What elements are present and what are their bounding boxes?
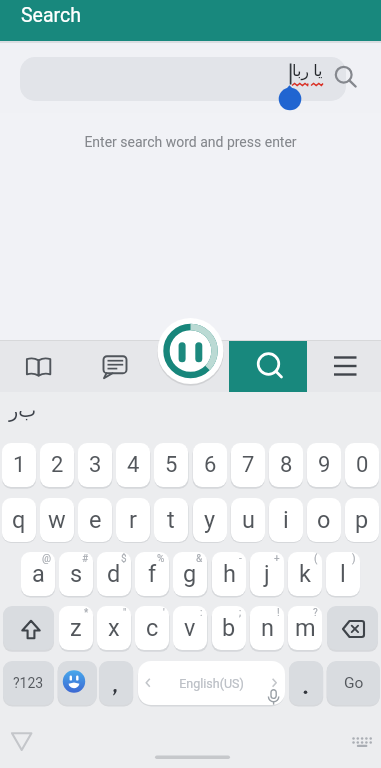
staticText: 4 [127, 452, 140, 478]
button[interactable]: p [345, 498, 379, 542]
button[interactable] [76, 341, 152, 393]
button[interactable] [99, 661, 133, 705]
button[interactable]: f [135, 552, 169, 596]
staticText: n [261, 614, 274, 642]
staticText: e [89, 506, 102, 534]
staticText: y [204, 506, 216, 534]
staticText: u [242, 506, 255, 534]
button[interactable] [6, 726, 38, 756]
staticText: t [167, 506, 175, 534]
staticText: r [129, 506, 137, 534]
staticText: " [123, 607, 127, 619]
button[interactable]: s [59, 552, 93, 596]
button[interactable] [20, 57, 346, 101]
staticText: k [299, 560, 311, 588]
button[interactable]: y [193, 498, 227, 542]
button[interactable]: 0 [345, 443, 379, 487]
button[interactable] [0, 341, 76, 393]
button[interactable] [305, 341, 381, 393]
staticText: g [183, 560, 197, 588]
staticText: English(US) [138, 676, 285, 691]
button[interactable]: j [250, 552, 284, 596]
staticText: h [223, 560, 236, 588]
staticText: w [48, 506, 66, 534]
staticText: o [317, 506, 331, 534]
button[interactable] [289, 661, 323, 705]
staticText: 1 [13, 452, 26, 478]
staticText: ! [277, 607, 280, 619]
staticText: x [108, 614, 120, 642]
staticText: + [274, 553, 280, 565]
staticText: % [157, 553, 165, 565]
button[interactable]: n [250, 606, 284, 650]
staticText: 8 [280, 452, 293, 478]
staticText: يا ربا [292, 59, 323, 81]
button[interactable]: 5 [154, 443, 188, 487]
button[interactable]: u [231, 498, 265, 542]
staticText: 7 [242, 452, 255, 478]
button[interactable]: h [212, 552, 246, 596]
staticText: ( [314, 553, 318, 565]
staticText: @ [42, 553, 51, 565]
button[interactable]: t [154, 498, 188, 542]
button[interactable] [158, 318, 224, 384]
staticText: b [222, 614, 236, 642]
button[interactable]: o [307, 498, 341, 542]
staticText: ?123 [13, 675, 44, 691]
button[interactable]: a [21, 552, 55, 596]
button[interactable] [229, 341, 305, 393]
staticText: 5 [165, 452, 178, 478]
button[interactable]: x [97, 606, 131, 650]
button[interactable]: w [40, 498, 74, 542]
button[interactable]: g [173, 552, 207, 596]
staticText: $ [121, 553, 127, 565]
staticText: # [82, 553, 89, 565]
button[interactable] [152, 341, 228, 393]
button[interactable]: Search [0, 0, 381, 41]
staticText: - [239, 553, 242, 565]
button[interactable]: 1 [2, 443, 36, 487]
button[interactable]: i [269, 498, 303, 542]
button[interactable]: m [288, 606, 322, 650]
staticText: i [283, 506, 289, 534]
staticText: 0 [356, 452, 369, 478]
button[interactable]: r [116, 498, 150, 542]
button[interactable]: 9 [307, 443, 341, 487]
button[interactable]: z [59, 606, 93, 650]
button[interactable]: 6 [193, 443, 227, 487]
button[interactable] [229, 341, 307, 393]
button[interactable]: 8 [269, 443, 303, 487]
staticText: q [12, 506, 26, 534]
button[interactable]: 7 [231, 443, 265, 487]
button[interactable]: ‭ﺭﺏ‬ [9, 397, 37, 423]
button[interactable]: 2 [40, 443, 74, 487]
button[interactable]: 3 [78, 443, 112, 487]
button[interactable]: k [288, 552, 322, 596]
button[interactable] [58, 661, 97, 705]
button[interactable] [327, 606, 378, 650]
staticText: 2 [51, 452, 64, 478]
staticText: m [295, 614, 316, 642]
button[interactable]: v [173, 606, 207, 650]
button[interactable]: q [2, 498, 36, 542]
button[interactable]: d [97, 552, 131, 596]
staticText: Go [344, 674, 364, 692]
staticText: p [355, 506, 369, 534]
button[interactable]: e [78, 498, 112, 542]
staticText: s [70, 560, 83, 588]
button[interactable]: b [212, 606, 246, 650]
staticText: 3 [89, 452, 102, 478]
button[interactable]: 4 [116, 443, 150, 487]
button[interactable] [138, 661, 285, 705]
staticText: 9 [318, 452, 331, 478]
staticText: Enter search word and press enter [0, 134, 381, 150]
staticText: l [340, 560, 346, 588]
button[interactable]: Go [327, 661, 380, 705]
staticText: Search [21, 4, 81, 27]
staticText: & [196, 553, 203, 565]
button[interactable]: ?123 [3, 661, 54, 705]
button[interactable] [3, 606, 54, 650]
button[interactable]: l [326, 552, 360, 596]
button[interactable]: c [135, 606, 169, 650]
button[interactable] [346, 730, 376, 754]
